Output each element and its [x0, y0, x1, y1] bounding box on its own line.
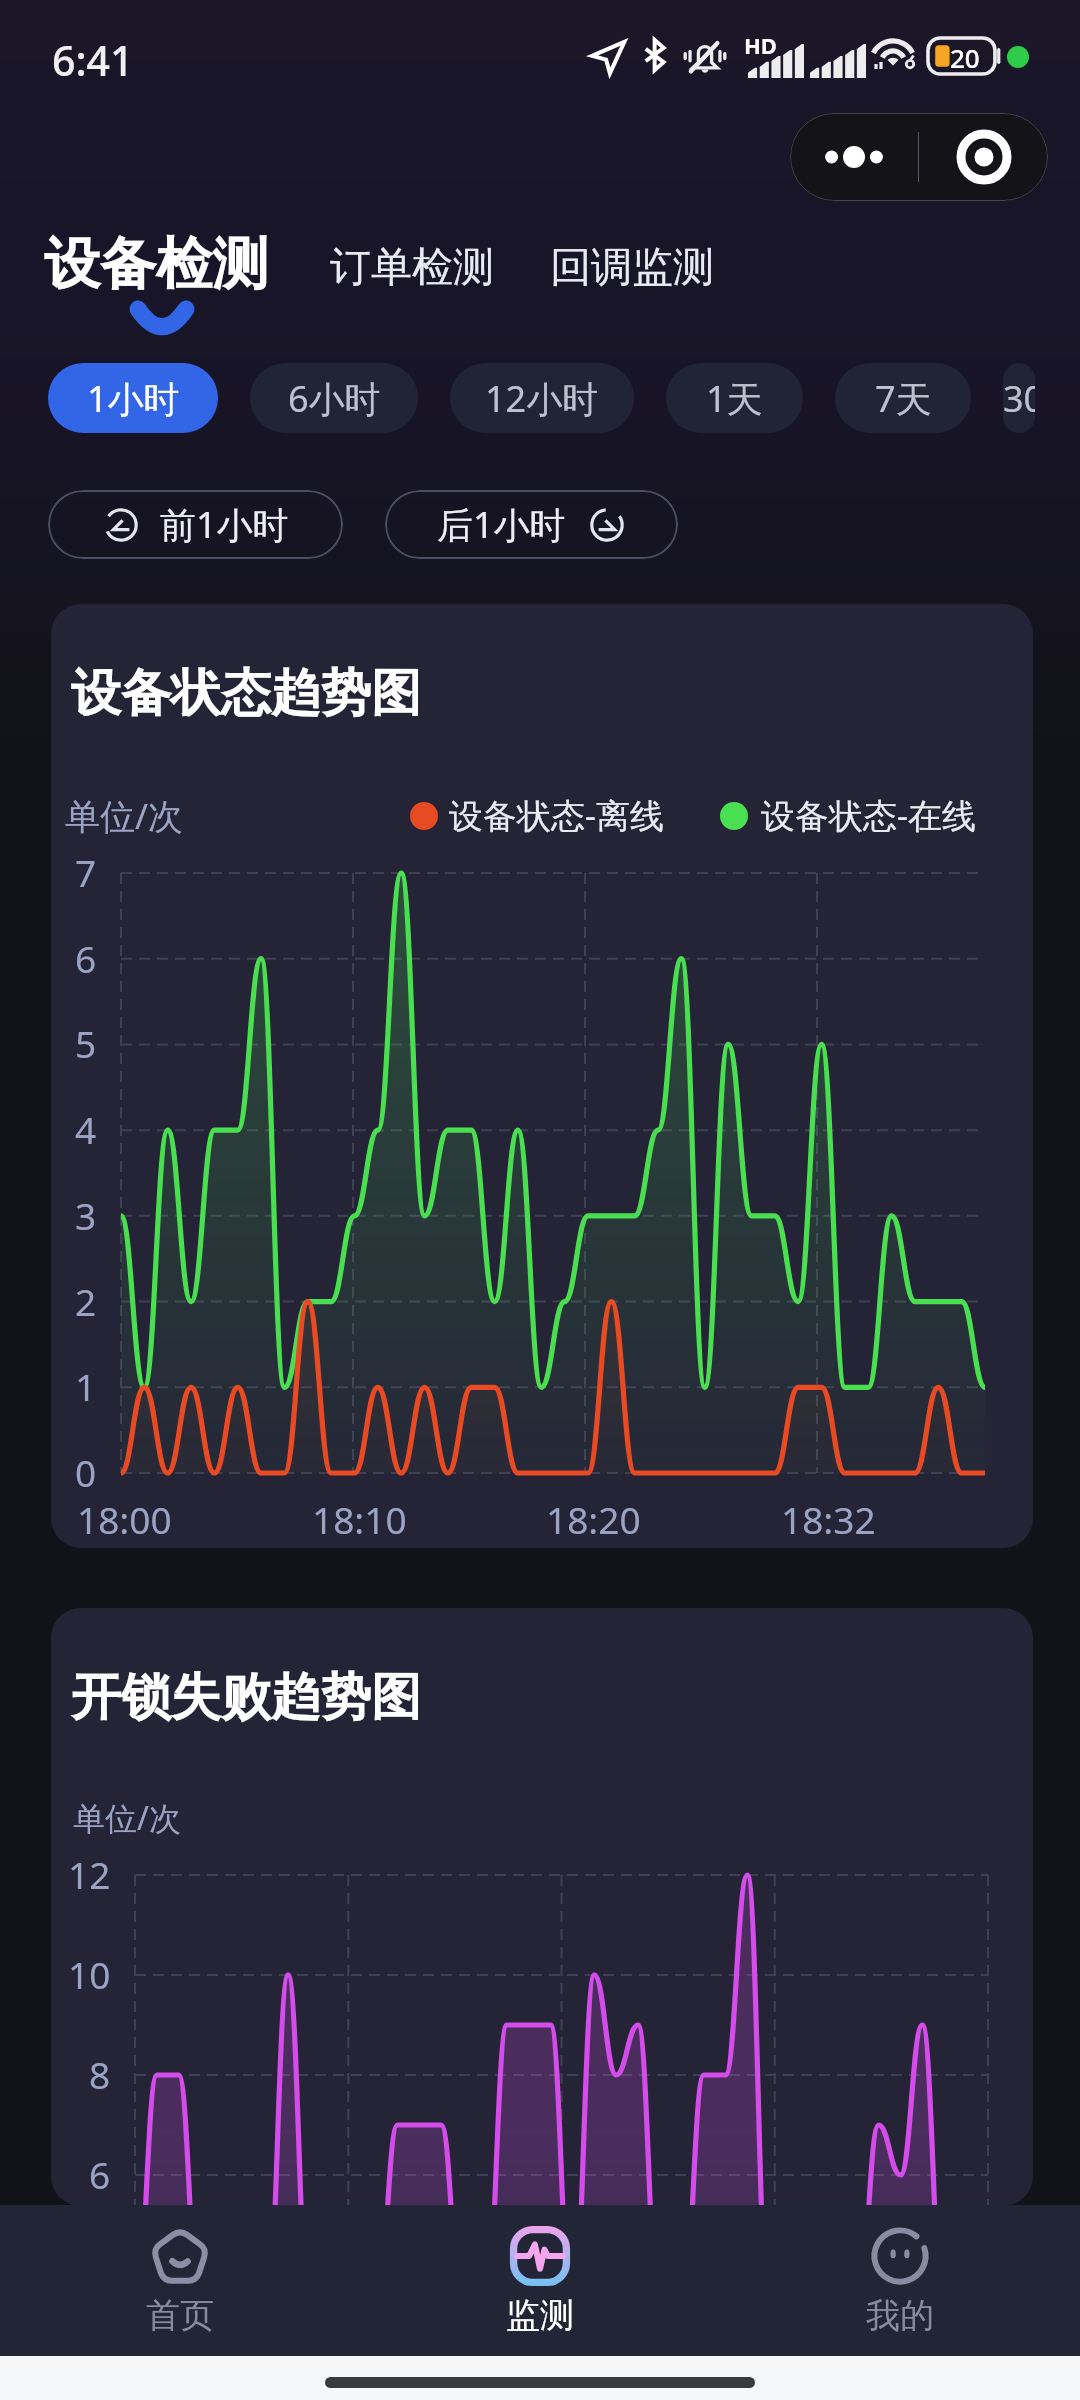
button[interactable]: 回调监测 — [542, 236, 722, 300]
staticText: 6 — [75, 933, 97, 983]
button[interactable]: 1天 — [666, 363, 803, 433]
staticText: HD — [744, 30, 777, 60]
staticText: 0 — [75, 1447, 97, 1497]
staticText: 单位/次 — [65, 792, 184, 840]
staticText: 7天 — [875, 374, 932, 423]
staticText: 后1小时 — [437, 500, 566, 549]
staticText: 18:32 — [781, 1494, 876, 1544]
staticText: 设备状态趋势图 — [71, 662, 421, 725]
button[interactable]: 监测 — [360, 2205, 720, 2356]
button[interactable]: 30天 — [1003, 363, 1035, 433]
staticText: 18:20 — [546, 1494, 641, 1544]
button[interactable]: Close mini program — [919, 113, 1048, 201]
button[interactable]: 前1小时 — [48, 490, 343, 559]
staticText: 开锁失败趋势图 — [71, 1666, 421, 1729]
staticText: 我的 — [866, 2294, 934, 2337]
staticText: 20 — [950, 40, 980, 75]
button[interactable]: 设备检测 — [44, 229, 294, 339]
staticText: 12小时 — [485, 374, 599, 423]
staticText: 6:41 — [52, 32, 134, 88]
staticText: 7 — [75, 847, 97, 897]
staticText: 5 — [75, 1018, 97, 1068]
staticText: 18:10 — [312, 1494, 407, 1544]
button[interactable]: 1小时 — [48, 363, 218, 433]
staticText: 订单检测 — [330, 242, 494, 294]
staticText: 单位/次 — [73, 1796, 181, 1840]
staticText: 2 — [75, 1276, 97, 1326]
staticText: 4 — [75, 1104, 97, 1154]
button[interactable]: 订单检测 — [322, 236, 502, 300]
button[interactable]: 12小时 — [450, 363, 634, 433]
button[interactable]: 6小时 — [250, 363, 418, 433]
button[interactable]: More options — [790, 113, 918, 201]
button[interactable]: 后1小时 — [385, 490, 678, 559]
staticText: 12 — [68, 1849, 111, 1899]
staticText: 设备检测 — [44, 229, 268, 300]
staticText: 6小时 — [288, 374, 381, 423]
staticText: 设备状态-在线 — [761, 792, 976, 838]
staticText: 1 — [75, 1361, 97, 1411]
staticText: 设备状态-离线 — [449, 792, 664, 838]
button[interactable]: 7天 — [835, 363, 971, 433]
staticText: 6 — [89, 2149, 111, 2199]
staticText: 8 — [89, 2049, 111, 2099]
staticText: 30天 — [1003, 374, 1035, 423]
staticText: 18:00 — [77, 1494, 172, 1544]
button[interactable]: 我的 — [720, 2205, 1080, 2356]
staticText: 1小时 — [87, 374, 180, 423]
staticText: 3 — [75, 1190, 97, 1240]
button[interactable]: 首页 — [0, 2205, 360, 2356]
staticText: 前1小时 — [160, 500, 289, 549]
staticText: 监测 — [506, 2294, 574, 2337]
staticText: 1天 — [706, 374, 763, 423]
staticText: 首页 — [146, 2294, 214, 2337]
staticText: 回调监测 — [550, 242, 714, 294]
staticText: 10 — [68, 1949, 111, 1999]
